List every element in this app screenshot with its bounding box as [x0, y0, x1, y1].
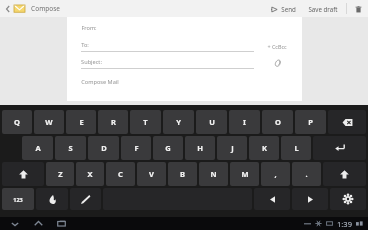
- button[interactable]: I: [229, 110, 260, 134]
- button[interactable]: A: [22, 136, 53, 160]
- staticText: ,: [274, 169, 277, 179]
- staticText: S: [68, 143, 73, 153]
- staticText: + CcBcc: [267, 43, 287, 50]
- staticText: 1:39: [337, 219, 352, 229]
- staticText: Compose: [31, 4, 60, 13]
- button[interactable]: H: [185, 136, 215, 160]
- button[interactable]: .: [292, 162, 321, 186]
- button[interactable]: Discard: [352, 3, 364, 15]
- staticText: Send: [281, 5, 296, 13]
- staticText: I: [243, 117, 246, 127]
- button[interactable]: R: [98, 110, 128, 134]
- button[interactable]: W: [34, 110, 64, 134]
- staticText: D: [101, 143, 107, 153]
- button[interactable]: 123: [2, 188, 34, 210]
- staticText: X: [87, 169, 93, 179]
- button[interactable]: Q: [2, 110, 32, 134]
- button[interactable]: From:: [67, 17, 302, 101]
- button[interactable]: Send: [268, 5, 299, 13]
- button[interactable]: D: [88, 136, 119, 160]
- button[interactable]: Settings: [330, 188, 366, 210]
- button[interactable]: G: [153, 136, 183, 160]
- button[interactable]: U: [196, 110, 227, 134]
- staticText: A: [35, 143, 41, 153]
- staticText: M: [241, 169, 249, 179]
- button[interactable]: V: [137, 162, 166, 186]
- staticText: H: [197, 143, 203, 153]
- button[interactable]: M: [230, 162, 259, 186]
- staticText: B: [180, 169, 185, 179]
- button[interactable]: Hide keyboard: [8, 217, 22, 230]
- button[interactable]: J: [217, 136, 247, 160]
- button[interactable]: L: [281, 136, 311, 160]
- button[interactable]: T: [130, 110, 161, 134]
- button[interactable]: Enter: [313, 136, 366, 160]
- button[interactable]: + CcBcc: [262, 43, 292, 50]
- button[interactable]: Z: [46, 162, 74, 186]
- button[interactable]: P: [295, 110, 326, 134]
- button[interactable]: C: [106, 162, 135, 186]
- button[interactable]: X: [76, 162, 104, 186]
- button[interactable]: O: [262, 110, 293, 134]
- staticText: G: [165, 143, 171, 153]
- button[interactable]: Save draft: [305, 5, 341, 13]
- staticText: .: [305, 169, 308, 179]
- staticText: 123: [13, 196, 23, 203]
- button[interactable]: S: [55, 136, 86, 160]
- staticText: Y: [176, 117, 181, 127]
- staticText: L: [294, 143, 299, 153]
- staticText: Save draft: [308, 5, 338, 13]
- staticText: Subject:: [81, 58, 102, 66]
- button[interactable]: Recents: [54, 217, 68, 230]
- staticText: Z: [58, 169, 63, 179]
- staticText: U: [209, 117, 215, 127]
- staticText: From:: [81, 24, 97, 32]
- button[interactable]: Y: [163, 110, 194, 134]
- staticText: V: [149, 169, 154, 179]
- button[interactable]: F: [121, 136, 151, 160]
- staticText: K: [262, 143, 267, 153]
- button[interactable]: Voice input: [36, 188, 68, 210]
- staticText: P: [308, 117, 313, 127]
- button[interactable]: Backspace: [328, 110, 366, 134]
- staticText: C: [118, 169, 123, 179]
- button[interactable]: Shift: [2, 162, 44, 186]
- staticText: F: [134, 143, 139, 153]
- staticText: W: [45, 117, 53, 127]
- button[interactable]: Left: [254, 188, 290, 210]
- button[interactable]: App icon: [13, 2, 26, 15]
- button[interactable]: E: [66, 110, 96, 134]
- button[interactable]: Shift: [323, 162, 366, 186]
- button[interactable]: Home: [31, 217, 45, 230]
- button[interactable]: N: [199, 162, 228, 186]
- staticText: R: [111, 117, 116, 127]
- staticText: T: [143, 117, 148, 127]
- button[interactable]: Right: [292, 188, 328, 210]
- staticText: Q: [14, 117, 20, 127]
- button[interactable]: ,: [261, 162, 290, 186]
- staticText: N: [210, 169, 217, 179]
- button[interactable]: Back: [3, 4, 13, 14]
- staticText: To:: [81, 41, 89, 49]
- staticText: O: [275, 117, 281, 127]
- button[interactable]: Handwriting: [70, 188, 101, 210]
- staticText: J: [231, 143, 234, 153]
- button[interactable]: Attach file: [262, 59, 292, 68]
- staticText: E: [79, 117, 84, 127]
- button[interactable]: K: [249, 136, 279, 160]
- staticText: Compose Mail: [81, 78, 119, 86]
- button[interactable]: B: [168, 162, 197, 186]
